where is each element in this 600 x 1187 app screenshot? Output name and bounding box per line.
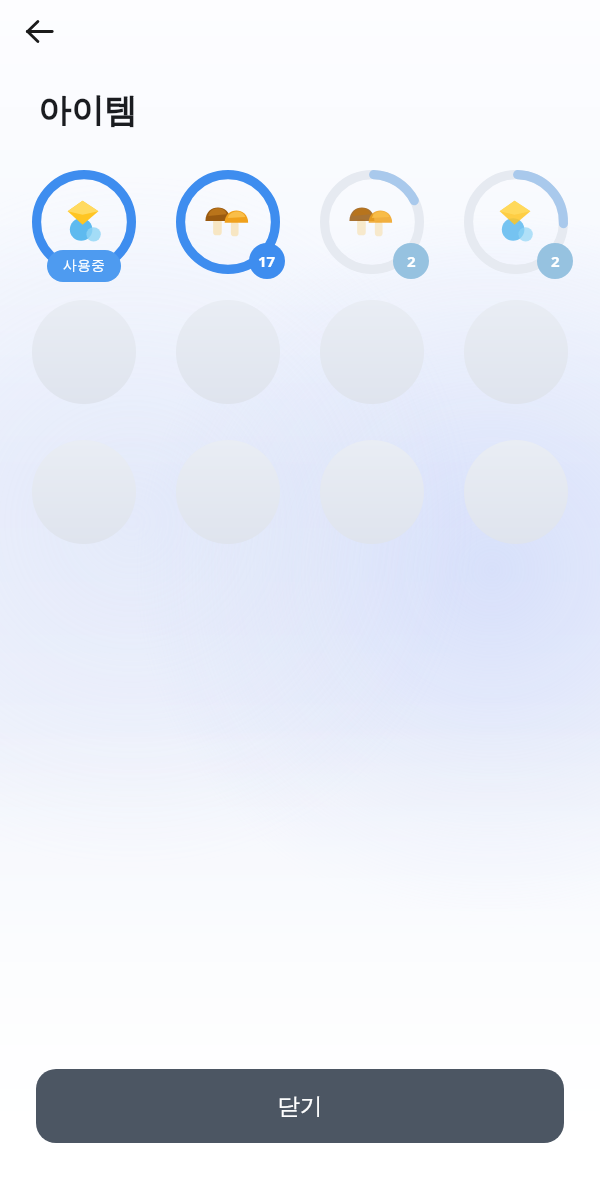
staticText: 사용중 <box>63 257 105 275</box>
button[interactable]: Item count 2 <box>318 168 426 276</box>
button[interactable]: Empty item slot <box>464 300 568 404</box>
button[interactable]: Empty item slot <box>32 300 136 404</box>
button[interactable]: Item in use <box>30 168 138 276</box>
button[interactable]: Back <box>12 4 66 58</box>
button[interactable]: 닫기 <box>36 1069 564 1143</box>
button[interactable]: Empty item slot <box>320 440 424 544</box>
button[interactable]: Item count 2 <box>462 168 570 276</box>
staticText: 닫기 <box>277 1092 323 1121</box>
button[interactable]: Empty item slot <box>320 300 424 404</box>
button[interactable]: Empty item slot <box>32 440 136 544</box>
staticText: 17 <box>258 251 276 271</box>
button[interactable]: Item count 17 <box>174 168 282 276</box>
staticText: 아이템 <box>38 90 137 132</box>
button[interactable]: Empty item slot <box>176 440 280 544</box>
button[interactable]: Empty item slot <box>464 440 568 544</box>
staticText: 2 <box>551 251 560 271</box>
button[interactable]: Empty item slot <box>176 300 280 404</box>
staticText: 2 <box>407 251 416 271</box>
